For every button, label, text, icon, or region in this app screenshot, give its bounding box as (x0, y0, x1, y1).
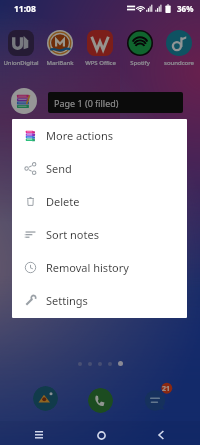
button[interactable]: Removal history (12, 251, 187, 284)
staticText: Page 1 (0 filled) (54, 97, 119, 109)
staticText: 11:08 (14, 3, 36, 15)
button[interactable]: Phone (88, 388, 113, 413)
button[interactable]: Messages (142, 382, 173, 413)
button[interactable]: Spotify (121, 30, 159, 67)
staticText: 21 (162, 384, 171, 394)
staticText: Spotify (130, 59, 150, 67)
staticText: Delete (46, 194, 80, 209)
staticText: MariBank (46, 59, 74, 67)
button[interactable]: UnionDigital (2, 30, 40, 67)
staticText: Sort notes (46, 227, 99, 242)
button[interactable]: Page 1 (0 filled) (48, 92, 183, 113)
button[interactable]: Sort notes (12, 218, 187, 251)
button[interactable]: Notes (11, 88, 37, 114)
button[interactable]: MariBank (41, 30, 79, 67)
button[interactable]: Home (87, 423, 115, 445)
staticText: soundcore (164, 59, 194, 67)
button[interactable]: Back (147, 423, 175, 445)
button[interactable]: Settings (12, 284, 187, 317)
staticText: Settings (46, 293, 88, 308)
staticText: Removal history (46, 260, 129, 275)
button[interactable]: Gallery (33, 386, 58, 411)
button[interactable]: Recent apps (25, 423, 53, 445)
button[interactable]: soundcore (160, 30, 198, 67)
button[interactable]: Delete (12, 185, 187, 218)
button[interactable]: WPS Office (81, 30, 119, 67)
staticText: Send (46, 161, 72, 176)
button[interactable]: Send (12, 152, 187, 185)
staticText: More actions (46, 128, 114, 143)
staticText: 36% (177, 3, 194, 14)
staticText: WPS Office (85, 59, 116, 67)
staticText: UnionDigital (3, 59, 39, 67)
button[interactable]: More actions (12, 119, 187, 152)
